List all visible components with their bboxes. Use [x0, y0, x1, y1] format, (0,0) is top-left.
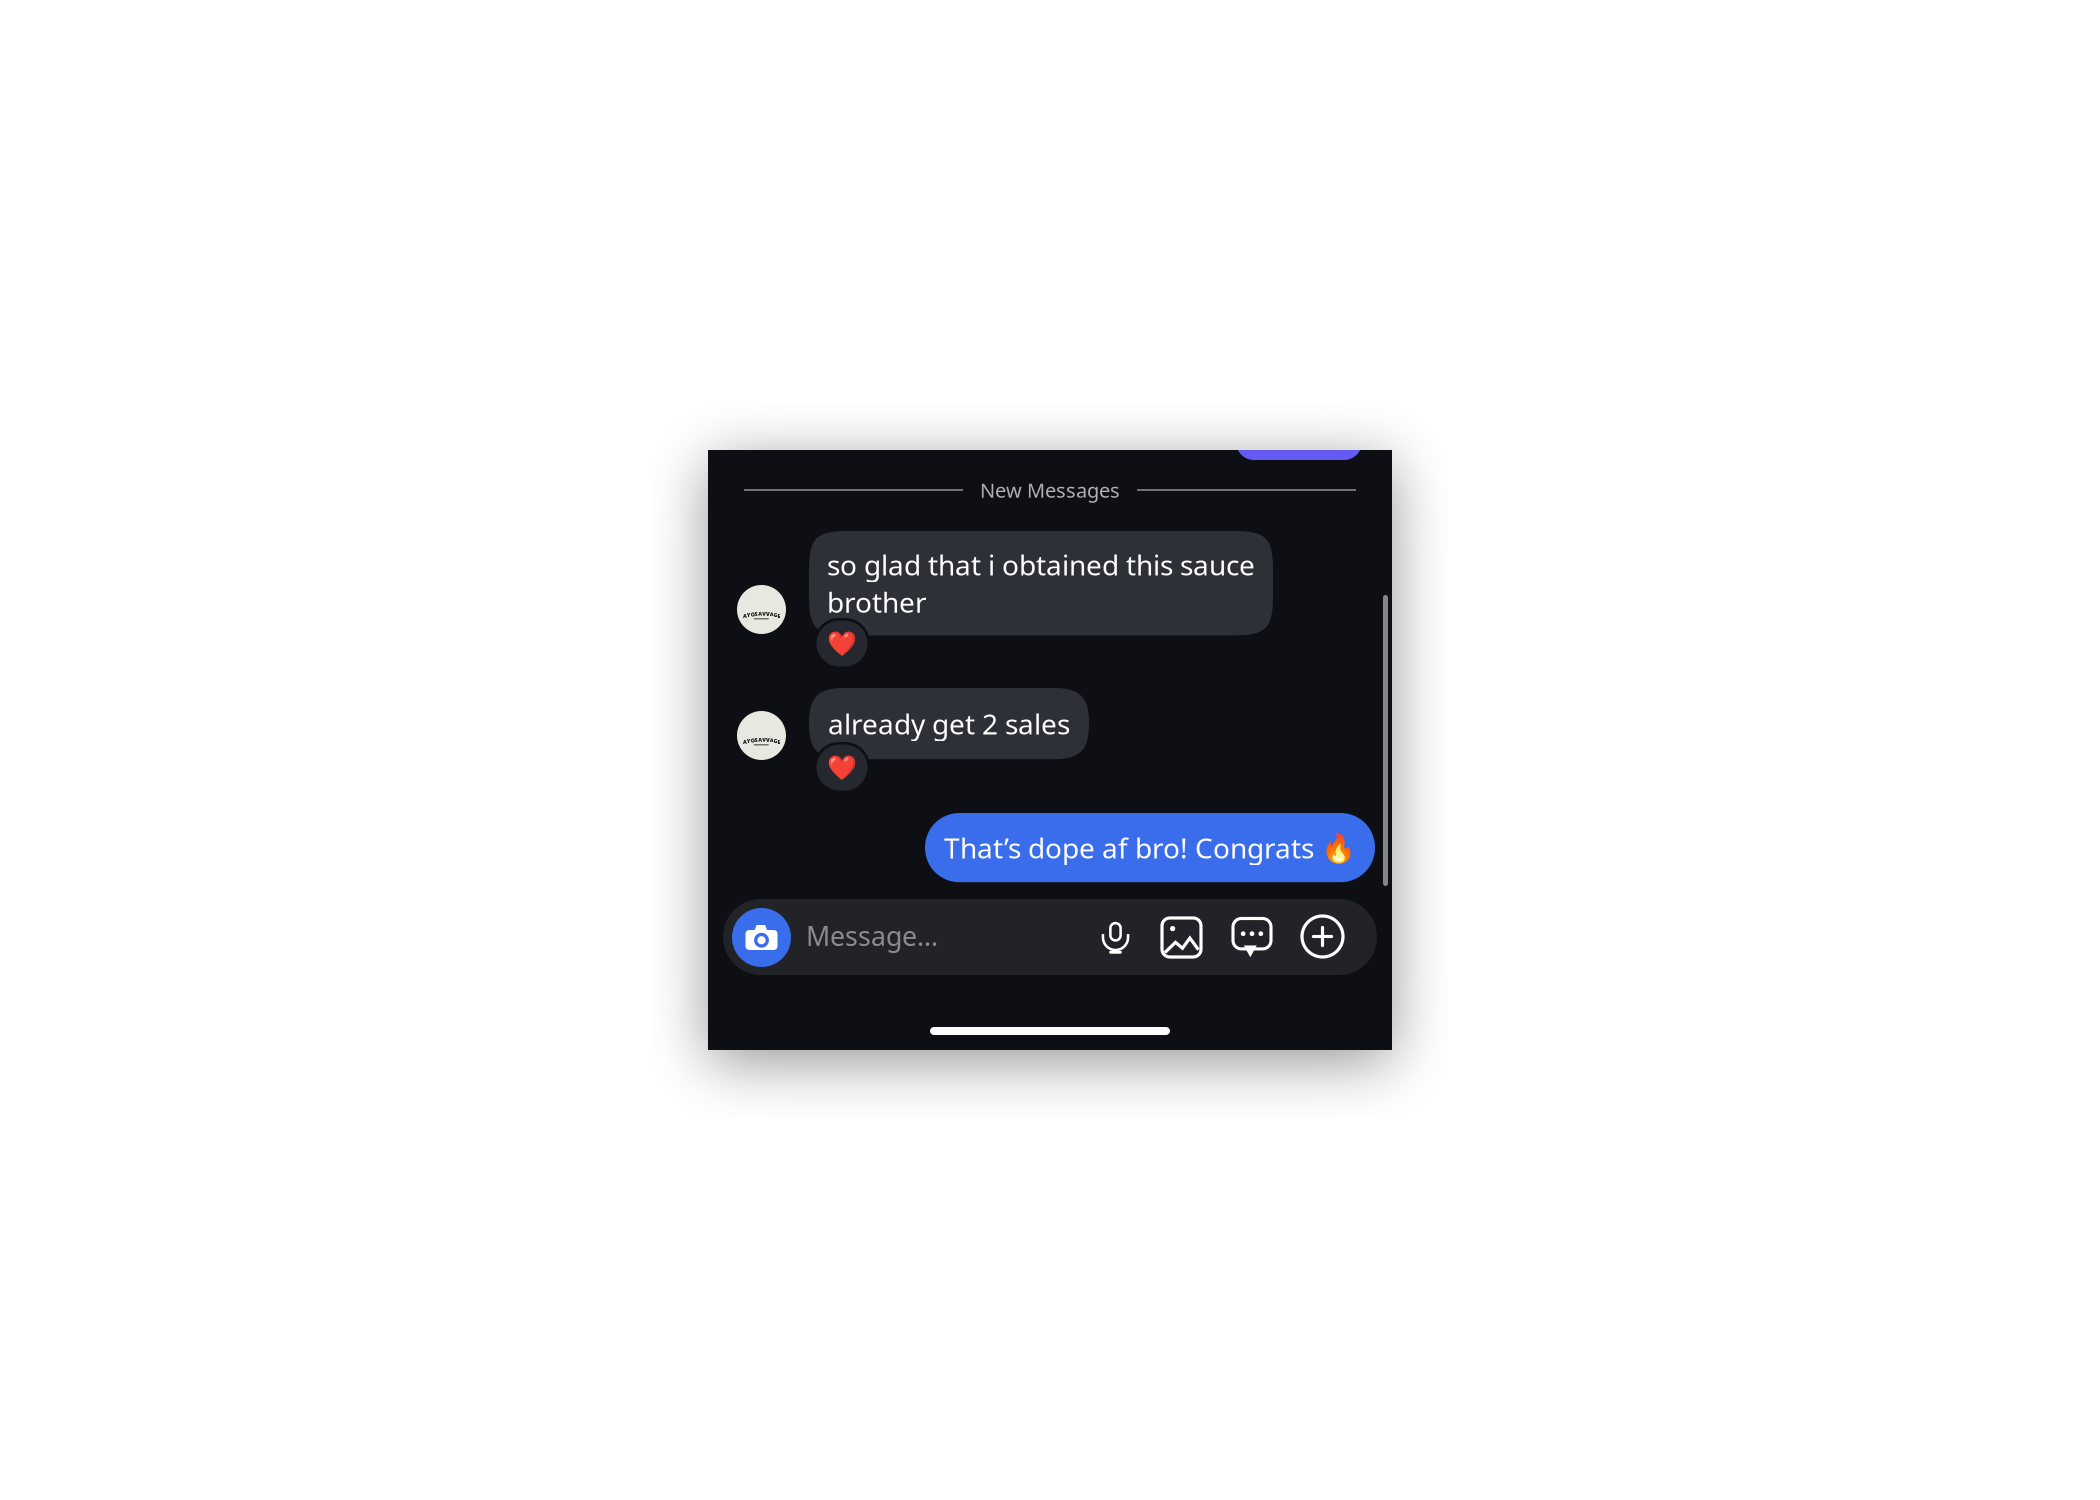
staticText: A	[743, 738, 747, 745]
staticText: O	[751, 737, 755, 744]
button[interactable]: so glad that i obtained this sauce broth…	[809, 531, 1273, 635]
staticText: G	[774, 737, 778, 745]
staticText: ❤️	[827, 630, 857, 657]
staticText: E	[777, 738, 780, 745]
staticText: A	[770, 737, 774, 744]
staticText: V	[762, 610, 766, 617]
staticText: A	[770, 611, 774, 618]
staticText: Message...	[806, 918, 938, 953]
staticText: G	[774, 611, 778, 619]
staticText: New Messages	[980, 477, 1120, 503]
staticText: S	[754, 610, 757, 618]
button[interactable]: Photos	[1162, 918, 1201, 957]
button[interactable]: More options	[1302, 916, 1343, 957]
button[interactable]: already get 2 sales	[809, 688, 1089, 759]
staticText: S	[754, 736, 757, 744]
staticText: so glad that i obtained this sauce broth…	[827, 546, 1255, 620]
button[interactable]: Heart reaction	[814, 742, 870, 793]
staticText: Y	[747, 737, 751, 745]
button[interactable]: That’s dope af bro! Congrats 🔥	[925, 813, 1375, 882]
staticText: E	[777, 612, 780, 619]
staticText: V	[766, 610, 770, 618]
staticText: A	[743, 612, 747, 619]
staticText: A	[758, 610, 762, 617]
button[interactable]: Voice message	[1100, 917, 1131, 958]
staticText: Y	[747, 611, 751, 619]
staticText: ❤️	[827, 754, 857, 781]
staticText: A	[758, 736, 762, 743]
button[interactable]: Camera	[732, 908, 791, 967]
staticText: V	[762, 736, 766, 743]
staticText: already get 2 sales	[828, 705, 1070, 742]
staticText: V	[766, 736, 770, 744]
staticText: O	[751, 611, 755, 618]
staticText: That’s dope af bro! Congrats 🔥	[944, 829, 1356, 866]
button[interactable]: Heart reaction	[814, 618, 870, 669]
button[interactable]: Stickers	[1233, 917, 1271, 958]
